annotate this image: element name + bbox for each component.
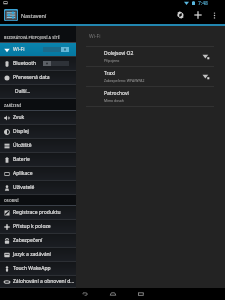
staticText: BEZDRÁTOVÁ PŘIPOJENÍ A SÍTĚ bbox=[4, 35, 60, 40]
staticText: Další... bbox=[15, 88, 31, 95]
staticText: Zabezpečeno: WPA/WPA2 bbox=[104, 78, 145, 83]
staticText: ZAŘÍZENÍ bbox=[4, 103, 22, 108]
button[interactable]: Turn off bbox=[43, 47, 69, 52]
button[interactable]: Zvuk bbox=[0, 111, 76, 124]
button[interactable]: Refresh bbox=[171, 6, 189, 24]
staticText: Zálohování a obnovení d... bbox=[13, 278, 75, 285]
staticText: Přístup k poloze bbox=[13, 223, 51, 230]
staticText: OSOBNÍ bbox=[4, 198, 19, 203]
staticText: Mimo dosah bbox=[104, 98, 124, 103]
staticText: Dolejsovi O2 bbox=[104, 50, 134, 57]
staticText: Patrochovi bbox=[104, 90, 129, 97]
button[interactable]: Add network bbox=[189, 6, 207, 24]
button[interactable]: Registrace produktu bbox=[0, 206, 76, 219]
staticText: Wi-Fi bbox=[13, 46, 25, 53]
button[interactable]: Dolejsovi O2 bbox=[76, 47, 225, 66]
staticText: Připojeno bbox=[104, 58, 120, 63]
staticText: Jazyk a zadávání bbox=[13, 251, 51, 258]
button[interactable]: Home bbox=[99, 288, 127, 300]
button[interactable]: Turn on bbox=[43, 61, 69, 66]
staticText: Registrace produktu bbox=[13, 209, 61, 216]
staticText: 7:48 bbox=[198, 0, 208, 6]
button[interactable]: Jazyk a zadávání bbox=[0, 248, 76, 261]
button[interactable]: More options bbox=[207, 6, 222, 24]
button[interactable]: Zabezpečení bbox=[0, 234, 76, 247]
staticText: Touch WakeApp bbox=[13, 265, 51, 272]
button[interactable]: Úložiště bbox=[0, 139, 76, 152]
staticText: Úložiště bbox=[13, 142, 32, 149]
button[interactable]: Uživatelé bbox=[0, 181, 76, 194]
staticText: Zabezpečení bbox=[13, 237, 43, 244]
staticText: Nastavení bbox=[21, 12, 47, 19]
button[interactable]: Bluetooth bbox=[0, 57, 76, 70]
staticText: Zvuk bbox=[13, 114, 25, 121]
button[interactable]: Back bbox=[71, 288, 99, 300]
button[interactable]: Patrochovi bbox=[76, 87, 225, 106]
button[interactable]: Displej bbox=[0, 125, 76, 138]
staticText: Wi-Fi bbox=[89, 33, 101, 40]
button[interactable]: Traxl bbox=[76, 67, 225, 86]
button[interactable]: Zálohování a obnovení d... bbox=[0, 276, 76, 287]
button[interactable]: Přenesená data bbox=[0, 71, 76, 84]
button[interactable]: Wi-Fi bbox=[0, 43, 76, 56]
button[interactable]: Další... bbox=[0, 85, 76, 98]
staticText: Uživatelé bbox=[13, 184, 35, 191]
button[interactable]: Baterie bbox=[0, 153, 76, 166]
staticText: Bluetooth bbox=[13, 60, 37, 67]
staticText: Baterie bbox=[13, 156, 30, 163]
button[interactable]: Touch WakeApp bbox=[0, 262, 76, 275]
button[interactable]: Recent apps bbox=[127, 288, 155, 300]
staticText: Přenesená data bbox=[13, 74, 50, 81]
button[interactable]: Přístup k poloze bbox=[0, 220, 76, 233]
staticText: Aplikace bbox=[13, 170, 33, 177]
button[interactable]: Aplikace bbox=[0, 167, 76, 180]
staticText: Displej bbox=[13, 128, 29, 135]
button[interactable]: Settings bbox=[4, 9, 18, 21]
staticText: Traxl bbox=[104, 70, 116, 77]
